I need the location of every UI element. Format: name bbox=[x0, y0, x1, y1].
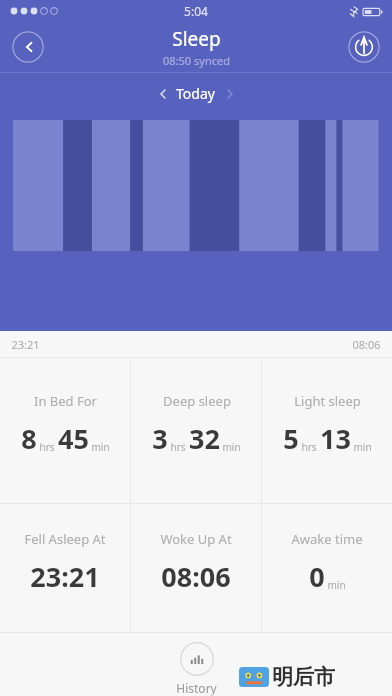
staticText: History bbox=[176, 680, 217, 696]
staticText: Fell Asleep At bbox=[24, 530, 106, 548]
staticText: min bbox=[91, 440, 110, 454]
staticText: 3 bbox=[152, 420, 168, 457]
staticText: 8 bbox=[21, 420, 37, 457]
button[interactable]: Sync bbox=[348, 31, 380, 63]
staticText: hrs bbox=[170, 440, 186, 454]
button[interactable]: In Bed For bbox=[0, 358, 130, 503]
staticText: 13 bbox=[320, 420, 351, 457]
button[interactable]: Deep sleep bbox=[131, 358, 261, 503]
staticText: 08:06 bbox=[161, 558, 231, 595]
staticText: 32 bbox=[189, 420, 220, 457]
staticText: 23:21 bbox=[11, 337, 40, 352]
staticText: Woke Up At bbox=[160, 530, 232, 548]
button[interactable]: Fell Asleep At bbox=[0, 504, 130, 632]
button[interactable]: Back bbox=[12, 31, 44, 63]
staticText: Today bbox=[176, 84, 215, 103]
button[interactable]: Today bbox=[156, 84, 237, 103]
staticText: min bbox=[222, 440, 241, 454]
staticText: min bbox=[353, 440, 372, 454]
staticText: hrs bbox=[301, 440, 317, 454]
staticText: hrs bbox=[39, 440, 55, 454]
staticText: 明后市 bbox=[272, 664, 335, 690]
button[interactable]: Light sleep bbox=[262, 358, 392, 503]
staticText: Deep sleep bbox=[163, 392, 231, 410]
staticText: min bbox=[327, 578, 346, 592]
staticText: In Bed For bbox=[34, 392, 97, 410]
staticText: 5:04 bbox=[184, 3, 208, 19]
staticText: 08:50 synced bbox=[163, 53, 230, 68]
staticText: 23:21 bbox=[30, 558, 100, 595]
staticText: Awake time bbox=[291, 530, 363, 548]
staticText: Light sleep bbox=[294, 392, 361, 410]
staticText: Sleep bbox=[172, 26, 221, 52]
staticText: 0 bbox=[309, 558, 325, 595]
staticText: 45 bbox=[58, 420, 89, 457]
button[interactable]: History bbox=[176, 642, 217, 696]
button[interactable]: Awake time bbox=[262, 504, 392, 632]
staticText: 08:06 bbox=[352, 337, 381, 352]
staticText: 5 bbox=[283, 420, 299, 457]
button[interactable]: Woke Up At bbox=[131, 504, 261, 632]
